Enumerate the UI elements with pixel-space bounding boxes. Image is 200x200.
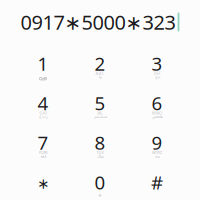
button[interactable]: 5 <box>71 88 128 127</box>
staticText: رذدخ <box>38 114 47 119</box>
staticText: 7 <box>37 130 48 155</box>
button[interactable]: 3 <box>128 48 185 88</box>
staticText: حج <box>154 75 159 79</box>
button[interactable]: 8 <box>71 127 128 167</box>
staticText: 6 <box>151 91 162 115</box>
button[interactable]: 4 <box>14 88 71 127</box>
button[interactable]: 7 <box>14 127 71 167</box>
staticText: ظطض <box>151 114 162 119</box>
staticText: ABC <box>95 71 104 76</box>
staticText: 5 <box>94 91 105 115</box>
button[interactable]: 9 <box>128 127 185 167</box>
staticText: يوه <box>154 154 159 158</box>
button[interactable]: 1 <box>14 48 71 88</box>
staticText: نملك <box>96 154 103 158</box>
staticText: ∗ <box>37 175 49 192</box>
staticText: WXYZ <box>152 150 162 155</box>
staticText: DEF <box>153 71 160 76</box>
staticText: + <box>98 191 102 200</box>
button[interactable]: 0 <box>71 167 128 200</box>
staticText: 0917∗5000∗323 <box>21 9 176 35</box>
staticText: MNO <box>152 110 162 115</box>
staticText: GHI <box>39 110 46 115</box>
staticText: TUV <box>96 150 103 155</box>
button[interactable]: 6 <box>128 88 185 127</box>
staticText: 9 <box>151 130 162 155</box>
button[interactable]: ∗ <box>14 167 71 200</box>
staticText: 2 <box>94 51 105 76</box>
staticText: 3 <box>151 51 162 76</box>
staticText: PQRS <box>38 150 47 155</box>
button[interactable]: 2 <box>71 48 128 88</box>
staticText: # <box>151 170 163 195</box>
staticText: صشسز <box>93 114 106 119</box>
staticText: JKL <box>97 110 102 115</box>
button[interactable]: # <box>128 167 185 200</box>
staticText: فغع <box>40 154 46 158</box>
staticText: تبا <box>98 75 101 79</box>
staticText: 4 <box>37 91 48 115</box>
staticText: 8 <box>94 130 105 155</box>
staticText: 0 <box>94 170 105 195</box>
staticText: 1 <box>37 51 48 76</box>
